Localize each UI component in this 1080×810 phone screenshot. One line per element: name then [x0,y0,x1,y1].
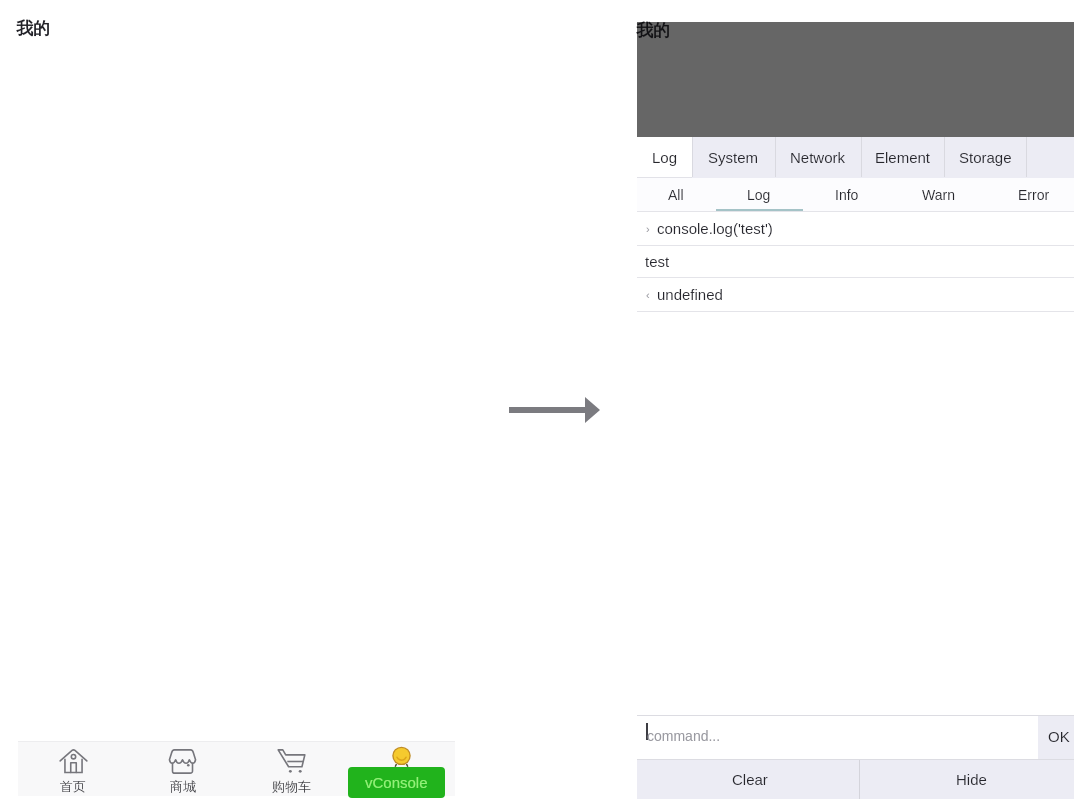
staticText: undefined [657,286,723,303]
staticText: › [646,223,650,235]
button[interactable]: ‹ [637,278,1074,311]
button[interactable]: OK [1038,716,1074,759]
button[interactable]: Storage [944,137,1026,177]
staticText: Hide [956,771,987,788]
staticText: 首页 [60,778,86,794]
staticText: 商城 [170,778,196,794]
staticText: Log [652,149,678,166]
button[interactable]: vConsole [348,767,445,798]
button[interactable]: Info [803,178,891,211]
staticText: All [668,187,684,203]
button[interactable]: Hide [860,760,1074,799]
button[interactable]: › [637,212,1074,245]
staticText: Error [1018,187,1050,203]
staticText: Network [790,149,846,166]
staticText: command... [647,728,721,744]
staticText: console.log('test') [657,220,773,237]
staticText: ‹ [646,289,650,301]
staticText: Log [747,187,771,203]
staticText: 我的 [16,18,50,39]
staticText: 我的 [636,20,670,41]
button[interactable]: 商城 [128,742,237,796]
button[interactable]: command... [637,716,1038,759]
other: vConsole badge [391,746,412,767]
other: Next step [509,397,600,423]
button[interactable]: Warn [891,178,985,211]
staticText: OK [1048,728,1070,745]
staticText: Warn [922,187,955,203]
staticText: 购物车 [272,778,311,794]
staticText: Element [875,149,931,166]
button[interactable]: Clear [637,760,859,799]
staticText: Storage [959,149,1012,166]
button[interactable]: Log [714,178,803,211]
button[interactable]: vConsole badge [346,742,455,796]
staticText: Clear [732,771,768,788]
button[interactable]: Element [861,137,944,177]
staticText: System [708,149,759,166]
staticText: vConsole [365,774,428,791]
staticText: Info [835,187,859,203]
button[interactable]: 购物车 [237,742,346,796]
staticText: test [645,253,670,270]
button[interactable]: Log [637,137,692,177]
button[interactable]: Error [989,178,1079,211]
button[interactable]: All [637,178,714,211]
button[interactable]: System [692,137,775,177]
button[interactable]: 首页 [18,742,128,796]
button[interactable]: test [637,246,1074,277]
button[interactable]: Network [775,137,861,177]
